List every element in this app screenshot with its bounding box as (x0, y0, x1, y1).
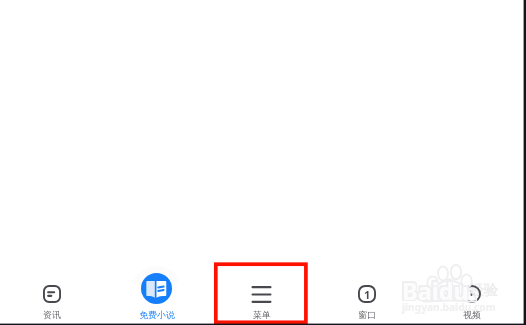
staticText: Baidu (400, 276, 467, 308)
staticText: Baidu (400, 275, 467, 307)
staticText: Baidu (402, 273, 469, 305)
staticText: jingyan.baidu.com (402, 300, 496, 314)
button[interactable]: Video (419, 0, 524, 18)
staticText: Baidu (403, 276, 470, 308)
staticText: 视频 (463, 309, 481, 320)
staticText: Baidu (403, 275, 470, 307)
staticText: 窗口 (358, 309, 376, 320)
staticText: Baidu (403, 273, 470, 305)
staticText: Baidu (400, 273, 467, 305)
staticText: 免费小说 (139, 309, 175, 320)
staticText: 资讯 (43, 309, 61, 320)
staticText: 1 (364, 287, 371, 302)
staticText: 经验 (469, 281, 498, 299)
staticText: 菜单 (253, 309, 271, 320)
staticText: Baidu (402, 276, 469, 308)
staticText: Baidu (402, 275, 469, 307)
